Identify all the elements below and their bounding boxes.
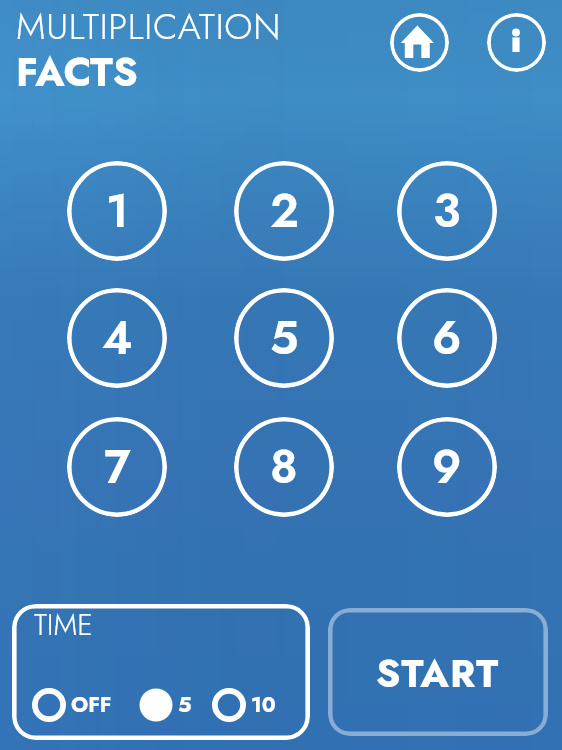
staticText: START <box>376 645 500 701</box>
staticText: OFF <box>71 690 112 720</box>
button[interactable]: 8 <box>234 417 334 517</box>
staticText: 3 <box>433 178 461 244</box>
button[interactable]: 1 <box>67 161 167 261</box>
staticText: 8 <box>270 434 298 500</box>
button[interactable]: 7 <box>67 417 167 517</box>
button[interactable]: 5 <box>234 288 334 388</box>
staticText: 9 <box>432 434 462 500</box>
staticText: 2 <box>270 178 299 244</box>
staticText: 10 <box>251 690 276 720</box>
button[interactable]: START <box>328 608 548 736</box>
button[interactable]: 9 <box>397 417 497 517</box>
button[interactable]: 2 <box>234 161 334 261</box>
staticText: MULTIPLICATION <box>16 0 282 52</box>
staticText: 4 <box>102 305 133 371</box>
staticText: 5 <box>178 690 192 720</box>
button[interactable]: TIME <box>12 604 310 740</box>
staticText: 7 <box>104 434 131 500</box>
button[interactable]: 6 <box>397 288 497 388</box>
button[interactable]: 3 <box>397 161 497 261</box>
button[interactable]: 10 <box>212 688 276 722</box>
button[interactable]: 4 <box>67 288 167 388</box>
button[interactable]: OFF <box>32 688 112 722</box>
button[interactable]: Info <box>487 13 546 72</box>
staticText: 6 <box>432 305 462 371</box>
button[interactable]: Home <box>390 13 449 72</box>
staticText: TIME <box>34 604 93 646</box>
staticText: 1 <box>106 178 129 244</box>
staticText: FACTS <box>16 43 138 101</box>
staticText: 5 <box>270 305 299 371</box>
button[interactable]: 5 <box>139 688 192 722</box>
